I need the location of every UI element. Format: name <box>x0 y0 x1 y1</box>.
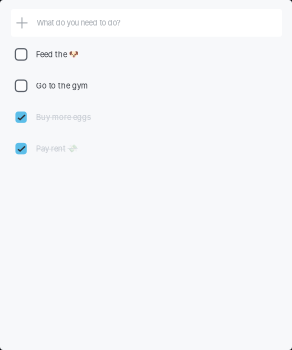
staticText: What do you need to do? <box>37 18 121 27</box>
staticText: Buy more eggs <box>36 113 91 122</box>
staticText: 🐶 <box>69 50 79 59</box>
button[interactable]: Go to the gym <box>0 70 292 101</box>
button[interactable]: Buy more eggs <box>0 101 292 133</box>
staticText: Feed the <box>36 50 67 59</box>
button[interactable]: What do you need to do? <box>11 9 282 37</box>
staticText: Go to the gym <box>36 81 88 90</box>
button[interactable]: Pay rent <box>0 133 292 164</box>
staticText: 💸 <box>68 144 78 153</box>
button[interactable]: Feed the <box>0 39 292 70</box>
staticText: Pay rent <box>36 144 66 153</box>
